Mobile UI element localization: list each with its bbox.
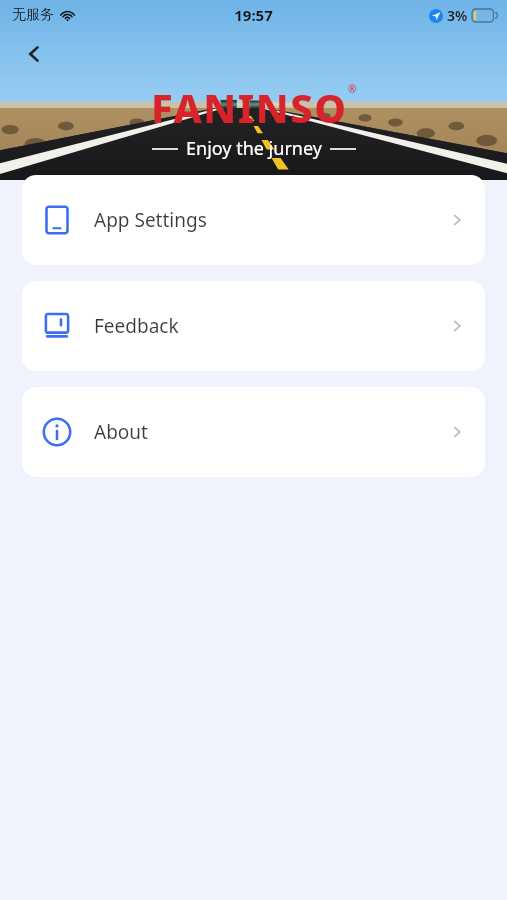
staticText: 19:57: [234, 5, 273, 25]
staticText: Feedback: [94, 313, 179, 339]
button[interactable]: App Settings: [22, 175, 485, 265]
button[interactable]: Feedback: [22, 281, 485, 371]
button[interactable]: Back: [14, 34, 54, 74]
staticText: 3%: [447, 6, 468, 25]
staticText: FANINSO: [151, 80, 348, 134]
staticText: ®: [348, 82, 357, 96]
button[interactable]: About: [22, 387, 485, 477]
staticText: App Settings: [94, 207, 207, 233]
staticText: 无服务: [12, 6, 54, 24]
staticText: About: [94, 419, 148, 445]
staticText: Enjoy the jurney: [186, 136, 322, 161]
